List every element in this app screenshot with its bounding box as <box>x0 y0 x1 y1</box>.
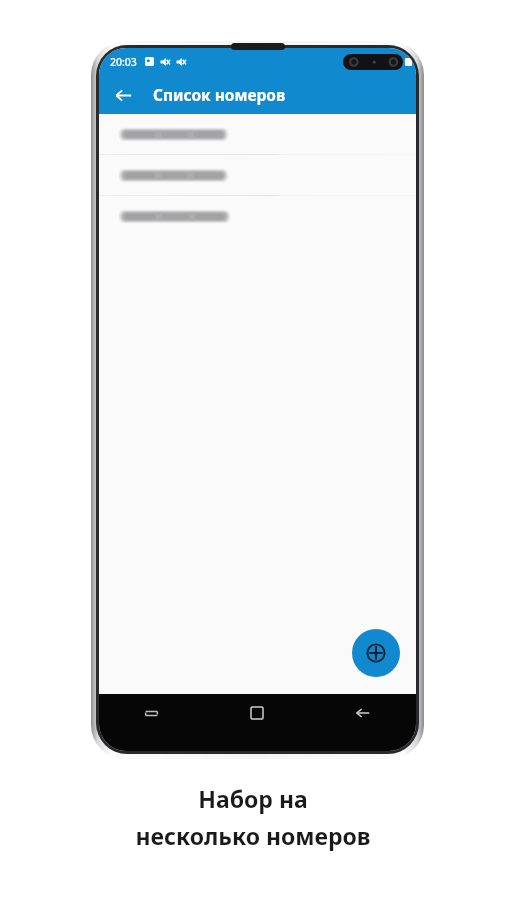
button[interactable]: Домой <box>204 694 310 732</box>
staticText: несколько номеров <box>135 820 371 851</box>
staticText: Список номеров <box>153 84 286 105</box>
staticText: Набор на <box>198 783 308 814</box>
button[interactable] <box>99 196 416 236</box>
button[interactable]: Добавить номер <box>352 629 400 677</box>
button[interactable] <box>99 114 416 154</box>
button[interactable] <box>99 155 416 195</box>
button[interactable]: Назад <box>310 694 416 732</box>
button[interactable]: Назад <box>106 78 140 112</box>
button[interactable]: Недавние приложения <box>99 694 204 732</box>
staticText: 20:03 <box>110 55 137 69</box>
